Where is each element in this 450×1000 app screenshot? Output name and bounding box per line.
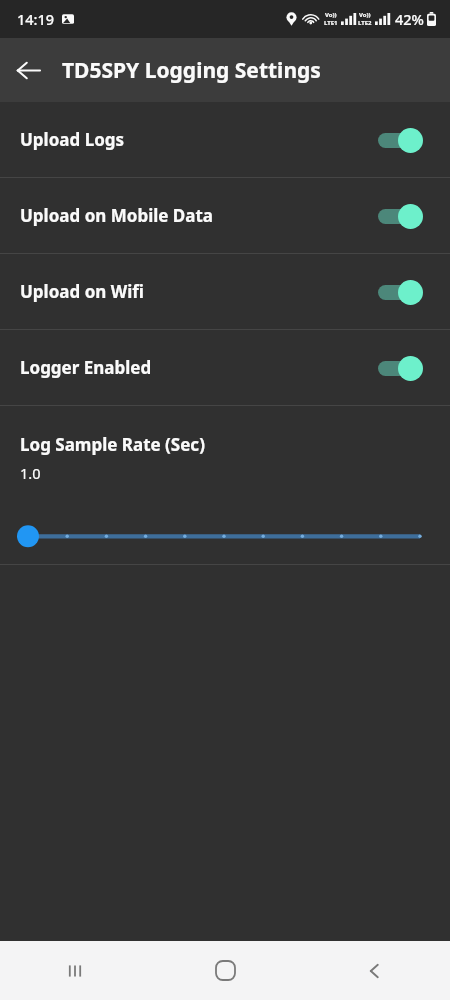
staticText: Upload Logs <box>20 128 125 151</box>
staticText: 1.0 <box>20 463 41 483</box>
staticText: 42% <box>395 9 424 29</box>
staticText: Vo)) <box>325 11 337 19</box>
button[interactable]: Upload on Mobile Data <box>0 178 450 253</box>
button[interactable]: Recents <box>0 941 150 1000</box>
button[interactable]: Upload on Wifi <box>0 254 450 329</box>
staticText: Log Sample Rate (Sec) <box>20 433 205 456</box>
button[interactable]: Back <box>300 941 450 1000</box>
staticText: LTE1 <box>324 19 338 27</box>
button[interactable]: Upload Logs <box>0 102 450 177</box>
button[interactable] <box>376 125 430 155</box>
staticText: Upload on Mobile Data <box>20 204 214 227</box>
staticText: TD5SPY Logging Settings <box>62 56 321 85</box>
button[interactable]: Home <box>150 941 300 1000</box>
button[interactable]: Back <box>0 42 56 98</box>
staticText: 14:19 <box>17 9 55 29</box>
button[interactable] <box>376 201 430 231</box>
button[interactable]: Logger Enabled <box>0 330 450 405</box>
staticText: Logger Enabled <box>20 356 152 379</box>
button[interactable]: Log sample rate slider <box>0 520 450 564</box>
button[interactable] <box>376 277 430 307</box>
button[interactable] <box>376 353 430 383</box>
staticText: LTE2 <box>358 19 372 27</box>
staticText: Vo)) <box>359 11 371 19</box>
staticText: Upload on Wifi <box>20 280 144 303</box>
